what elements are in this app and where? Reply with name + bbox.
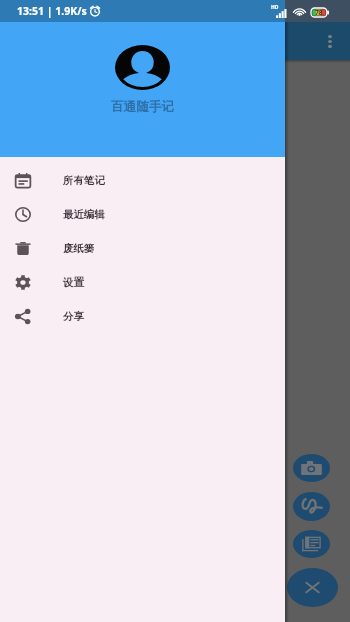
staticText: 分享: [63, 310, 84, 323]
button[interactable]: Text note: [293, 530, 330, 558]
button[interactable]: Close: [287, 568, 338, 607]
staticText: 废纸篓: [63, 242, 95, 255]
staticText: 百通随手记: [111, 99, 174, 115]
button[interactable]: 分享: [0, 299, 285, 333]
button[interactable]: 废纸篓: [0, 231, 285, 265]
button[interactable]: 所有笔记: [0, 163, 285, 197]
button[interactable]: 最近编辑: [0, 197, 285, 231]
button[interactable]: Handwriting note: [293, 492, 330, 521]
staticText: 设置: [63, 276, 84, 289]
staticText: 最近编辑: [63, 208, 105, 221]
button[interactable]: More options: [315, 26, 345, 56]
staticText: 所有笔记: [63, 174, 105, 187]
button[interactable]: Take photo: [293, 454, 330, 482]
button[interactable]: 设置: [0, 265, 285, 299]
staticText: 13:51 | 1.9K/s: [17, 4, 87, 18]
staticText: HD: [271, 4, 279, 11]
staticText: 78: [315, 8, 323, 17]
